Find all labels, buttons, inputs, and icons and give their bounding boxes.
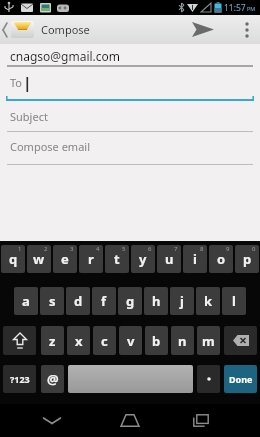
staticText: 11:57: [224, 2, 246, 14]
staticText: To: [10, 75, 23, 90]
staticText: b: [152, 332, 161, 350]
button[interactable]: p: [235, 245, 259, 273]
staticText: c: [101, 332, 108, 350]
staticText: h: [152, 292, 161, 310]
button[interactable]: v: [119, 326, 142, 355]
staticText: y: [139, 250, 147, 268]
button[interactable]: m: [197, 326, 220, 355]
button[interactable]: [197, 365, 220, 393]
staticText: v: [127, 332, 135, 350]
button[interactable]: s: [40, 287, 64, 315]
button[interactable]: j: [170, 287, 194, 315]
staticText: 8: [200, 245, 204, 253]
button[interactable]: [3, 326, 36, 355]
button[interactable]: [100, 404, 160, 437]
staticText: Compose email: [10, 139, 90, 154]
button[interactable]: a: [14, 287, 38, 315]
button[interactable]: @: [41, 365, 64, 393]
staticText: j: [180, 292, 184, 310]
staticText: 5: [122, 245, 126, 253]
staticText: 0: [252, 245, 256, 253]
button[interactable]: [186, 15, 220, 44]
staticText: Compose: [41, 22, 90, 37]
staticText: 7: [174, 245, 178, 253]
staticText: z: [49, 332, 56, 350]
staticText: u: [165, 250, 174, 268]
staticText: w: [33, 250, 45, 268]
button[interactable]: Done: [224, 365, 257, 393]
button[interactable]: Compose: [0, 19, 90, 40]
staticText: x: [75, 332, 83, 350]
button[interactable]: i: [183, 245, 207, 273]
staticText: t: [114, 250, 120, 268]
staticText: q: [9, 250, 18, 268]
button[interactable]: [68, 365, 193, 393]
button[interactable]: y: [131, 245, 155, 273]
staticText: e: [61, 250, 69, 268]
button[interactable]: x: [67, 326, 90, 355]
staticText: 9: [226, 245, 230, 253]
button[interactable]: [234, 15, 260, 44]
button[interactable]: t: [105, 245, 129, 273]
button[interactable]: g: [118, 287, 142, 315]
staticText: o: [217, 250, 226, 268]
staticText: i: [193, 250, 197, 268]
button[interactable]: z: [41, 326, 64, 355]
button[interactable]: [22, 404, 82, 437]
staticText: a: [22, 292, 30, 310]
staticText: @: [47, 370, 59, 388]
staticText: 3: [70, 245, 74, 253]
button[interactable]: h: [144, 287, 168, 315]
button[interactable]: q: [1, 245, 25, 273]
button[interactable]: [224, 326, 257, 355]
button[interactable]: n: [171, 326, 194, 355]
staticText: d: [74, 292, 83, 310]
staticText: f: [101, 292, 107, 310]
button[interactable]: Compose email: [0, 132, 260, 165]
staticText: s: [49, 292, 56, 310]
staticText: p: [243, 250, 252, 268]
button[interactable]: l: [222, 287, 246, 315]
button[interactable]: f: [92, 287, 116, 315]
button[interactable]: To: [0, 67, 260, 101]
button[interactable]: k: [196, 287, 220, 315]
staticText: l: [232, 292, 236, 310]
staticText: Subject: [10, 109, 48, 124]
button[interactable]: b: [145, 326, 168, 355]
staticText: 1: [18, 245, 22, 253]
staticText: PM: [247, 5, 256, 12]
button[interactable]: u: [157, 245, 181, 273]
button[interactable]: c: [93, 326, 116, 355]
staticText: m: [202, 332, 215, 350]
staticText: 6: [148, 245, 152, 253]
staticText: ?123: [10, 373, 30, 385]
staticText: g: [126, 292, 135, 310]
button[interactable]: [171, 404, 231, 437]
staticText: k: [204, 292, 213, 310]
button[interactable]: r: [79, 245, 103, 273]
button[interactable]: e: [53, 245, 77, 273]
button[interactable]: d: [66, 287, 90, 315]
button[interactable]: ?123: [3, 365, 36, 393]
staticText: Done: [229, 373, 253, 385]
staticText: r: [88, 250, 94, 268]
staticText: 2: [44, 245, 48, 253]
staticText: 4: [96, 245, 100, 253]
button[interactable]: o: [209, 245, 233, 273]
staticText: n: [178, 332, 187, 350]
button[interactable]: Subject: [0, 101, 260, 132]
button[interactable]: cnagso@gmail.com: [10, 48, 121, 64]
button[interactable]: w: [27, 245, 51, 273]
